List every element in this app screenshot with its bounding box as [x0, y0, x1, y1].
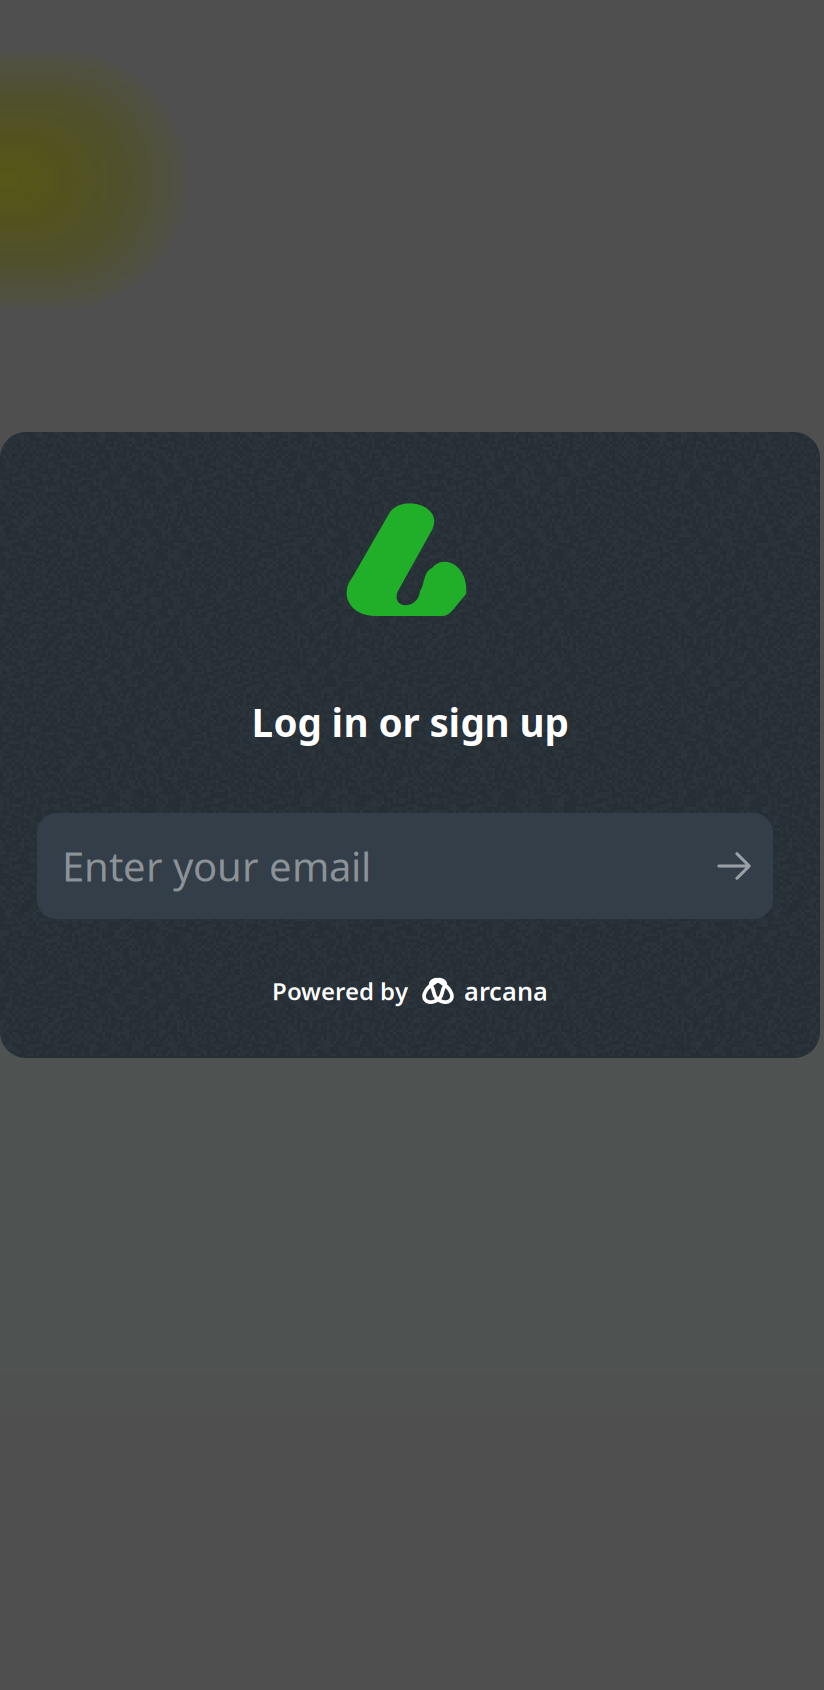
- staticText: Log in or sign up: [251, 696, 568, 748]
- staticText: arcana: [464, 974, 548, 1008]
- button[interactable]: Powered by: [268, 970, 552, 1012]
- button[interactable]: Continue: [703, 813, 767, 919]
- staticText: Powered by: [272, 975, 408, 1007]
- staticText: Enter your email: [62, 839, 371, 892]
- button[interactable]: Enter your email: [37, 813, 773, 919]
